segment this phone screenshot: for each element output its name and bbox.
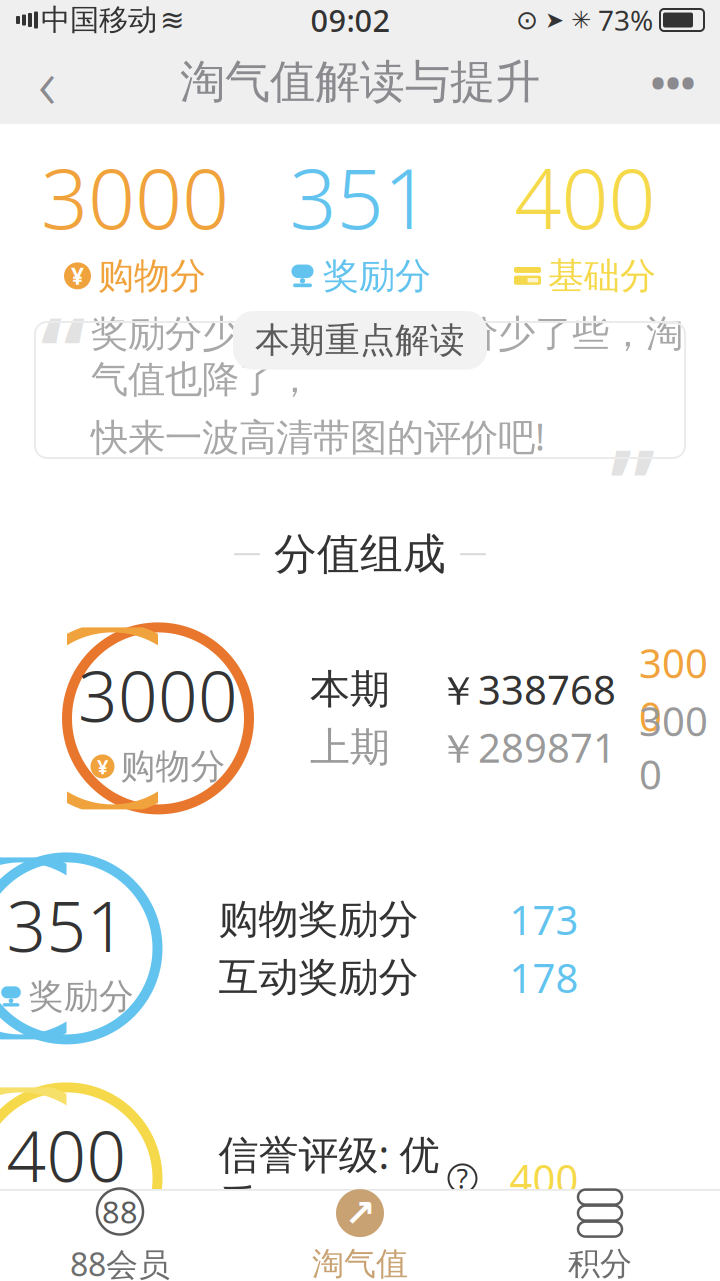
staticText: ¥	[71, 261, 84, 291]
staticText: 购物奖励分	[218, 895, 418, 944]
staticText: 3000	[639, 636, 708, 742]
staticText: 178	[509, 951, 578, 1004]
staticText: ⊙	[516, 5, 538, 35]
staticText: 奖励分	[29, 975, 134, 1018]
staticText: 351	[6, 879, 126, 971]
button[interactable]: More options	[634, 40, 712, 124]
staticText: 购物分	[98, 254, 206, 298]
staticText: 互动奖励分	[218, 953, 418, 1002]
staticText: ≋	[160, 3, 185, 37]
staticText: 3000	[78, 649, 238, 741]
staticText: ✳	[571, 6, 591, 34]
staticText: 400	[6, 1109, 126, 1201]
button[interactable]: 关于信誉评级	[447, 1163, 477, 1193]
staticText: 351	[289, 142, 430, 252]
staticText: ↗	[344, 1192, 375, 1234]
staticText: ‹	[38, 36, 56, 128]
staticText: ➤	[545, 7, 564, 33]
staticText: 88会员	[70, 1242, 170, 1281]
staticText: 积分	[568, 1244, 632, 1281]
staticText: 400	[514, 142, 655, 252]
staticText: ”	[610, 416, 655, 550]
staticText: 基础分	[548, 254, 656, 298]
staticText: 信誉评级: 优秀	[218, 1127, 439, 1229]
staticText: •••	[650, 55, 695, 108]
staticText: 奖励分	[323, 254, 431, 298]
staticText: 88	[102, 1191, 138, 1232]
button[interactable]: 积分	[480, 1192, 720, 1280]
staticText: “	[40, 284, 85, 418]
staticText: 奖励分少了因为亲的评价少了些，淘气值也降了，	[91, 311, 683, 403]
staticText: 本期重点解读	[255, 319, 465, 362]
staticText: 中国移动	[41, 2, 157, 38]
staticText: ¥	[97, 753, 108, 780]
staticText: ￥338768	[438, 663, 616, 716]
button[interactable]: Back	[8, 40, 86, 124]
staticText: 购物分	[120, 745, 225, 788]
staticText: 73%	[598, 1, 653, 39]
button[interactable]: ↗	[240, 1192, 480, 1280]
staticText: ?	[456, 1161, 468, 1196]
staticText: 400	[509, 1152, 578, 1205]
staticText: 3000	[639, 694, 708, 800]
staticText: 上期	[310, 723, 390, 772]
staticText: 基础分	[29, 1205, 134, 1248]
staticText: 分值组成	[274, 528, 446, 580]
staticText: 3000	[41, 142, 229, 252]
staticText: 09:02	[310, 0, 390, 40]
staticText: 快来一波高清带图的评价吧!	[91, 412, 545, 461]
button[interactable]: 88	[0, 1192, 240, 1280]
staticText: 本期	[310, 665, 390, 714]
staticText: ￥289871	[438, 721, 616, 774]
staticText: 淘气值	[312, 1244, 408, 1281]
staticText: 173	[509, 893, 578, 946]
staticText: 淘气值解读与提升	[180, 54, 540, 110]
